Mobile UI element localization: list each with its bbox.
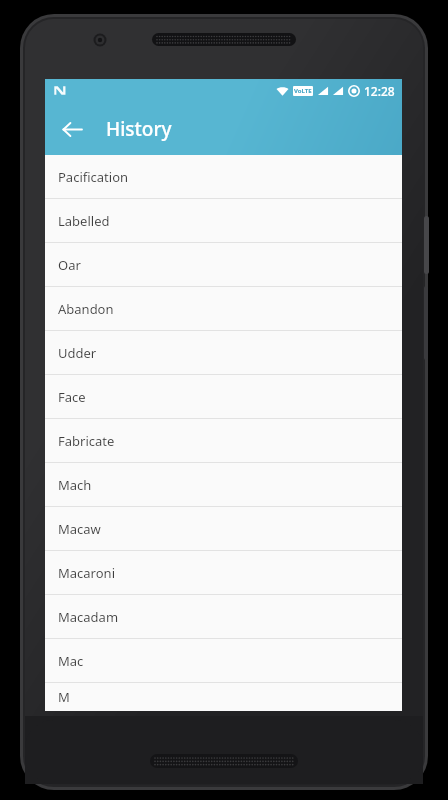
button[interactable]: M	[45, 683, 402, 711]
button[interactable]: Udder	[45, 331, 402, 374]
staticText: Abandon	[58, 300, 114, 318]
staticText: Pacification	[58, 168, 129, 186]
staticText: M	[58, 688, 70, 706]
staticText: Macaroni	[58, 564, 115, 582]
staticText: Mach	[58, 476, 92, 494]
staticText: History	[106, 116, 172, 142]
staticText: Fabricate	[58, 432, 115, 450]
staticText: Oar	[58, 256, 81, 274]
staticText: Face	[58, 388, 86, 406]
button[interactable]: Fabricate	[45, 419, 402, 462]
button[interactable]: Back	[51, 108, 93, 150]
staticText: VoLTE	[294, 87, 312, 95]
staticText: Labelled	[58, 212, 110, 230]
staticText: Macaw	[58, 520, 101, 538]
button[interactable]: Abandon	[45, 287, 402, 330]
button[interactable]: Face	[45, 375, 402, 418]
staticText: Mac	[58, 652, 84, 670]
button[interactable]: Pacification	[45, 155, 402, 198]
button[interactable]: Mach	[45, 463, 402, 506]
staticText: Udder	[58, 344, 97, 362]
button[interactable]: Macaroni	[45, 551, 402, 594]
button[interactable]: Mac	[45, 639, 402, 682]
staticText: 12:28	[364, 83, 395, 99]
button[interactable]: Macadam	[45, 595, 402, 638]
button[interactable]: Oar	[45, 243, 402, 286]
button[interactable]: Macaw	[45, 507, 402, 550]
button[interactable]: Labelled	[45, 199, 402, 242]
staticText: Macadam	[58, 608, 119, 626]
